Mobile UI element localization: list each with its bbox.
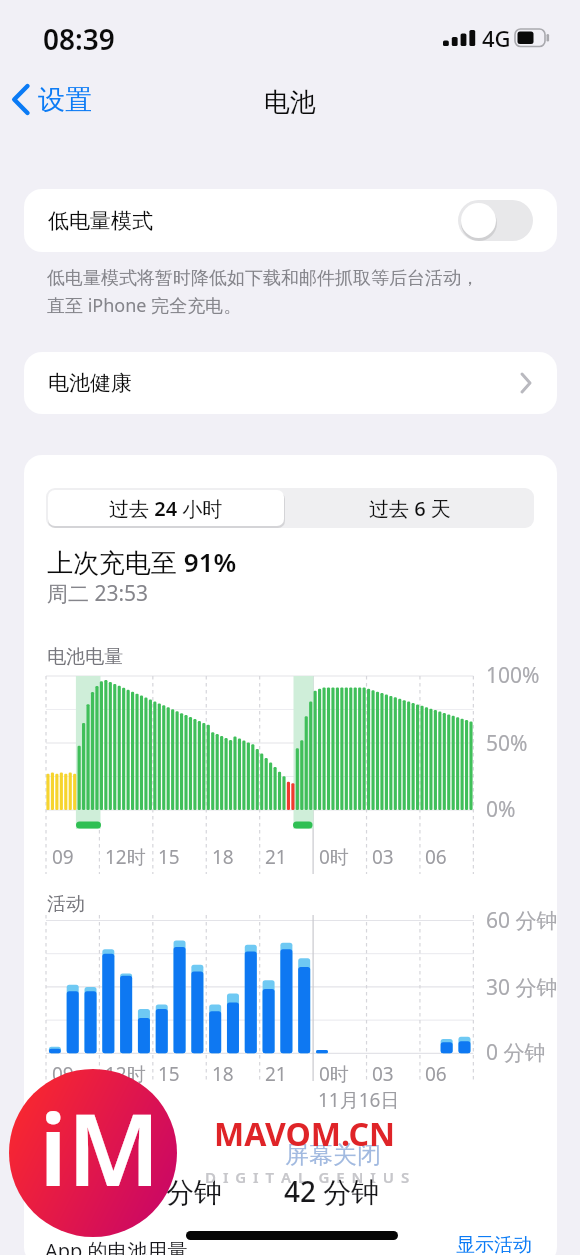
staticText: 过去 24 小时 (109, 495, 223, 522)
staticText: App 的电池用量 (45, 1237, 188, 1255)
staticText: 42 分钟 (284, 1172, 380, 1210)
staticText: 06 (425, 1061, 447, 1087)
staticText: 12时 (105, 1061, 146, 1087)
staticText: MAVOM.CN (214, 1112, 395, 1156)
staticText: 0时 (319, 1061, 349, 1087)
staticText: 21 (265, 1061, 287, 1087)
staticText: 50% (486, 729, 528, 758)
staticText: 电池健康 (48, 370, 132, 396)
staticText: 15 (158, 844, 180, 870)
staticText: 100% (486, 661, 540, 690)
staticText: 18 (212, 844, 234, 870)
staticText: 0% (486, 795, 516, 824)
staticText: 屏幕关闭 (285, 1140, 381, 1170)
staticText: 周二 23:53 (47, 579, 149, 608)
staticText: 60 分钟 (486, 906, 558, 935)
button[interactable]: 过去 6 天 (286, 490, 534, 526)
staticText: 06 (425, 844, 447, 870)
button[interactable]: 电池健康 (24, 352, 557, 414)
staticText: 显示活动 (456, 1233, 532, 1255)
staticText: 0 分钟 (486, 1038, 546, 1067)
staticText: 低电量模式将暂时降低如下载和邮件抓取等后台活动， 直至 iPhone 完全充电。 (47, 267, 479, 317)
staticText: 上次充电至 91% (47, 544, 237, 580)
staticText: 15 (158, 1061, 180, 1087)
staticText: 09 (52, 1061, 74, 1087)
staticText: 0时 (319, 844, 349, 870)
staticText: 活动 (47, 892, 85, 916)
staticText: 4G (482, 23, 511, 53)
button[interactable]: 显示活动 (450, 1228, 550, 1255)
staticText: 设置 (38, 83, 92, 117)
staticText: 低电量模式 (48, 208, 153, 234)
button[interactable]: 设置 (6, 78, 116, 138)
staticText: 09 (52, 844, 74, 870)
staticText: 电池 (264, 86, 316, 119)
staticText: 3 小时 26 分钟 (40, 1172, 222, 1210)
staticText: 18 (212, 1061, 234, 1087)
button[interactable]: 低电量模式 (24, 189, 557, 252)
button[interactable]: 过去 24 小时 (48, 490, 284, 526)
staticText: 11月16日 (318, 1087, 400, 1113)
staticText: 电池电量 (47, 645, 123, 669)
staticText: 03 (372, 844, 394, 870)
staticText: 过去 6 天 (369, 495, 451, 522)
staticText: D I G I T A L G E N I U S (205, 1167, 411, 1187)
staticText: 08:39 (43, 20, 115, 58)
staticText: 12时 (105, 844, 146, 870)
staticText: 21 (265, 844, 287, 870)
staticText: iM (39, 1079, 161, 1215)
staticText: 03 (372, 1061, 394, 1087)
staticText: 30 分钟 (486, 973, 558, 1002)
